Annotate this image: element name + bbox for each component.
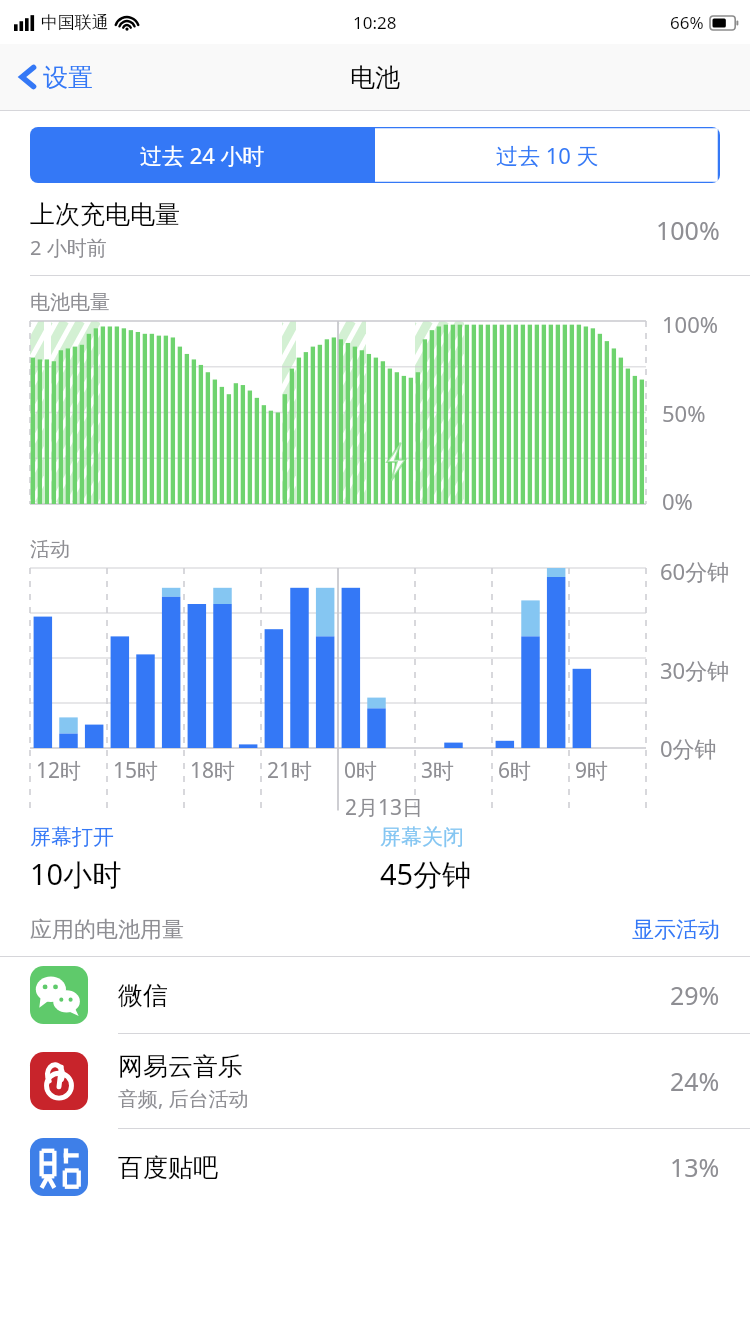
- staticText: 网易云音乐: [118, 1051, 243, 1082]
- staticText: 100%: [656, 213, 720, 247]
- staticText: 9时: [575, 756, 609, 785]
- staticText: 13%: [670, 1150, 720, 1184]
- staticText: 应用的电池用量: [30, 916, 632, 944]
- staticText: 中国联通: [41, 12, 109, 33]
- staticText: 100%: [662, 309, 719, 339]
- staticText: 3时: [421, 756, 455, 785]
- staticText: 29%: [670, 978, 720, 1012]
- staticText: 10小时: [30, 854, 122, 894]
- button[interactable]: 上次充电电量: [0, 199, 750, 275]
- button[interactable]: 设置: [12, 55, 99, 99]
- button[interactable]: 网易云音乐: [0, 1034, 750, 1128]
- staticText: 活动: [30, 537, 70, 562]
- staticText: 音频, 后台活动: [118, 1085, 249, 1112]
- staticText: 24%: [670, 1064, 720, 1098]
- button[interactable]: 百度贴吧: [0, 1129, 750, 1205]
- button[interactable]: 显示活动: [632, 916, 720, 944]
- staticText: 0时: [344, 756, 378, 785]
- staticText: 6时: [498, 756, 532, 785]
- staticText: 百度贴吧: [118, 1152, 218, 1183]
- button[interactable]: 微信: [0, 957, 750, 1033]
- staticText: 18时: [190, 756, 236, 785]
- staticText: 过去 10 天: [496, 140, 599, 170]
- staticText: 0%: [662, 486, 693, 516]
- staticText: 45分钟: [380, 854, 472, 894]
- staticText: 屏幕关闭: [380, 824, 464, 850]
- button[interactable]: 过去 24 小时: [30, 127, 375, 183]
- staticText: 66%: [670, 11, 704, 34]
- button[interactable]: 过去 10 天: [375, 127, 720, 183]
- staticText: 屏幕打开: [30, 824, 114, 850]
- staticText: 显示活动: [632, 916, 720, 944]
- staticText: 过去 24 小时: [140, 140, 265, 170]
- staticText: 12时: [36, 756, 82, 785]
- staticText: 上次充电电量: [30, 199, 180, 230]
- staticText: 0分钟: [660, 733, 717, 763]
- staticText: 60分钟: [660, 556, 730, 586]
- staticText: 电池电量: [30, 290, 110, 315]
- staticText: 15时: [113, 756, 159, 785]
- staticText: 设置: [43, 62, 93, 93]
- staticText: 微信: [118, 980, 168, 1011]
- staticText: 2月13日: [345, 793, 424, 822]
- staticText: 50%: [662, 398, 706, 428]
- staticText: 电池: [350, 62, 400, 93]
- staticText: 10:28: [353, 11, 397, 34]
- staticText: 2 小时前: [30, 234, 107, 261]
- staticText: 30分钟: [660, 655, 730, 685]
- staticText: 21时: [267, 756, 313, 785]
